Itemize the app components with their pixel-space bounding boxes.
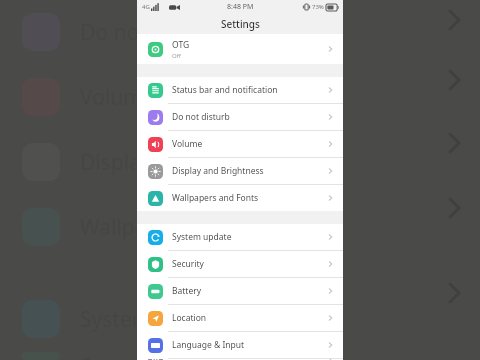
- staticText: Battery: [172, 285, 202, 297]
- staticText: 8:48 PM: [227, 2, 254, 12]
- staticText: OTG: [172, 39, 190, 51]
- staticText: Location: [172, 312, 207, 324]
- staticText: Volume: [172, 138, 203, 150]
- staticText: System: [80, 305, 152, 334]
- button[interactable]: Display and Brightness: [137, 158, 343, 184]
- staticText: 4G: [142, 3, 150, 11]
- button[interactable]: Battery: [137, 278, 343, 304]
- button[interactable]: Volume: [137, 131, 343, 157]
- staticText: System update: [172, 231, 232, 243]
- button[interactable]: Security: [137, 251, 343, 277]
- staticText: Settings: [221, 17, 260, 31]
- staticText: Display and Brightness: [172, 165, 264, 177]
- staticText: Wallpa: [80, 213, 147, 242]
- staticText: Do not: [80, 18, 147, 47]
- button[interactable]: System update: [137, 224, 343, 250]
- button[interactable]: Language & Input: [137, 332, 343, 358]
- button[interactable]: More settings: [137, 359, 343, 360]
- button[interactable]: Do not disturb: [137, 104, 343, 130]
- staticText: Wallpapers and Fonts: [172, 192, 259, 204]
- button[interactable]: OTG: [137, 34, 343, 64]
- staticText: Volume: [80, 83, 155, 112]
- staticText: 73%: [312, 3, 324, 11]
- staticText: Language & Input: [172, 339, 245, 351]
- staticText: Do not disturb: [172, 111, 230, 123]
- button[interactable]: Wallpapers and Fonts: [137, 185, 343, 211]
- staticText: Security: [172, 258, 204, 270]
- button[interactable]: Status bar and notification: [137, 77, 343, 103]
- staticText: Off: [172, 52, 181, 60]
- staticText: Displa: [80, 148, 141, 177]
- button[interactable]: Location: [137, 305, 343, 331]
- staticText: Status bar and notification: [172, 84, 278, 96]
